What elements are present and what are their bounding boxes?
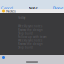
staticText: Done — [53, 5, 63, 11]
staticText: Weekly sync notes — [18, 24, 42, 28]
button[interactable]: Compose — [2, 56, 5, 59]
staticText: Ship build — [18, 46, 33, 49]
staticText: Today — [18, 16, 25, 19]
staticText: Follow up with team — [18, 35, 46, 39]
staticText: Ship build — [18, 32, 33, 35]
staticText: Cancel — [1, 5, 13, 11]
staticText: Notes — [6, 8, 16, 14]
staticText: Weekly sync notes — [18, 39, 42, 42]
staticText: Review the design — [18, 28, 43, 32]
button[interactable]: Done — [53, 5, 63, 11]
staticText: Note — [28, 5, 37, 11]
button[interactable]: Cancel — [1, 5, 13, 11]
staticText: Review the design — [18, 42, 43, 46]
